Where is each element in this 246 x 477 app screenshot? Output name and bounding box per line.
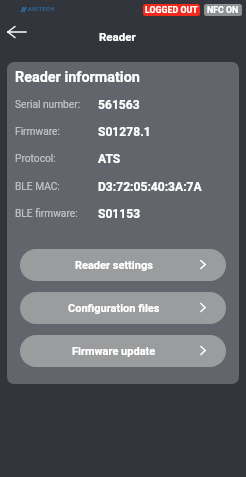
staticText: Firmware update (72, 345, 156, 358)
staticText: Reader information (15, 69, 140, 86)
button[interactable]: LOGGED OUT (143, 4, 200, 16)
staticText: BLE firmware: (15, 208, 78, 220)
button[interactable]: NFC ON (204, 4, 242, 16)
staticText: LOGGED OUT (145, 5, 198, 15)
staticText: S01278.1 (98, 125, 151, 139)
staticText: BLE MAC: (15, 181, 60, 193)
staticText: NFC ON (207, 5, 239, 15)
staticText: Configuration files (68, 302, 160, 315)
staticText: D3:72:05:40:3A:7A (98, 180, 202, 194)
staticText: S01153 (98, 207, 141, 221)
staticText: Reader (99, 30, 136, 43)
staticText: Protocol: (15, 153, 56, 165)
staticText: ARITECH (28, 6, 55, 13)
button[interactable]: Configuration files (20, 292, 226, 324)
staticText: Reader settings (75, 259, 153, 272)
staticText: ATS (98, 152, 121, 166)
staticText: Firmware: (15, 126, 60, 138)
button[interactable]: Reader settings (20, 249, 226, 281)
staticText: 561563 (98, 98, 140, 112)
button[interactable]: Firmware update (20, 335, 226, 367)
staticText: Serial number: (15, 99, 81, 111)
button[interactable]: Back (3, 18, 31, 46)
